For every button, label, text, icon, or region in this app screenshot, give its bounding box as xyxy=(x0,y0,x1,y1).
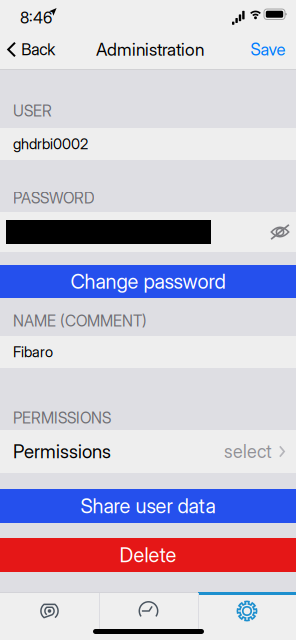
button[interactable]: Permissions xyxy=(0,430,296,473)
button[interactable]: Devices xyxy=(0,592,99,630)
staticText: PASSWORD xyxy=(13,189,95,207)
staticText: USER xyxy=(13,102,52,120)
button[interactable]: Change password xyxy=(0,265,296,298)
staticText: Change password xyxy=(70,269,225,294)
staticText: Delete xyxy=(119,543,176,567)
button[interactable]: Back xyxy=(0,30,72,69)
button[interactable]: Dashboard xyxy=(99,592,198,630)
staticText: select xyxy=(224,441,272,462)
staticText: Permissions xyxy=(13,440,111,463)
staticText: ghdrbi0002 xyxy=(13,135,88,153)
button[interactable]: Settings xyxy=(198,592,296,630)
staticText: Share user data xyxy=(80,494,215,518)
staticText: PERMISSIONS xyxy=(13,409,111,427)
button[interactable]: Show password xyxy=(260,212,296,252)
button[interactable]: Delete xyxy=(0,538,296,572)
staticText: Back xyxy=(21,40,55,59)
button[interactable]: Share user data xyxy=(0,489,296,523)
staticText: Save xyxy=(250,39,285,60)
staticText: 8:46 xyxy=(20,8,52,27)
staticText: Fibaro xyxy=(13,343,53,361)
staticText: NAME (COMMENT) xyxy=(13,312,147,330)
staticText: Administration xyxy=(96,39,204,60)
button[interactable]: Save xyxy=(241,30,295,69)
